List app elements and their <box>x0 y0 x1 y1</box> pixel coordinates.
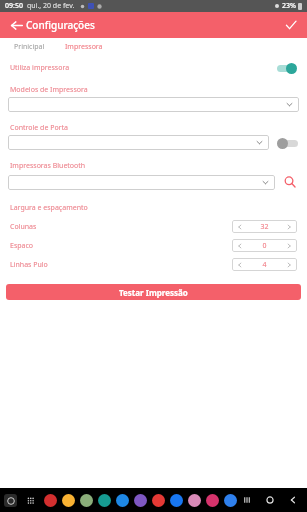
button[interactable]: Dropdown <box>8 97 299 112</box>
button[interactable]: Dropdown <box>8 175 275 190</box>
button[interactable]: Assistant <box>4 494 17 507</box>
button[interactable]: Prinicipal <box>10 38 49 56</box>
button[interactable]: App 2 <box>62 494 75 507</box>
button[interactable]: Dropdown <box>8 135 269 150</box>
button[interactable]: Toggle off <box>277 137 299 149</box>
button[interactable]: Increase Espaco <box>281 239 297 252</box>
button[interactable]: Back <box>6 15 26 35</box>
staticText: Prinicipal <box>14 42 45 52</box>
button[interactable]: Decrease Linhas Pulo <box>232 258 248 271</box>
staticText: Largura e espaçamento <box>10 203 88 213</box>
staticText: 23% <box>282 1 296 11</box>
staticText: 4 <box>262 260 267 270</box>
staticText: Impressora <box>65 42 103 52</box>
staticText: 09:50 <box>5 1 23 11</box>
button[interactable]: Messages <box>116 494 129 507</box>
staticText: Modelos de Impressora <box>10 85 88 95</box>
staticText: Linhas Pulo <box>10 260 48 270</box>
staticText: 32 <box>260 222 269 232</box>
staticText: Configurações <box>26 18 95 32</box>
button[interactable]: App 3 <box>188 494 201 507</box>
button[interactable]: Maps <box>80 494 93 507</box>
button[interactable]: Increase Linhas Pulo <box>281 258 297 271</box>
button[interactable]: App 1 <box>44 494 57 507</box>
button[interactable]: Back <box>286 493 300 507</box>
staticText: Controle de Porta <box>10 123 68 133</box>
button[interactable]: Confirm <box>281 15 301 35</box>
button[interactable]: Increase Colunas <box>281 220 297 233</box>
button[interactable]: Calendar <box>98 494 111 507</box>
button[interactable]: Utiliza impressora <box>0 58 307 78</box>
staticText: Impressoras Bluetooth <box>10 161 86 171</box>
button[interactable]: All apps <box>24 494 37 507</box>
staticText: Colunas <box>10 222 37 232</box>
button[interactable]: Toggle on <box>275 62 297 74</box>
button[interactable]: Recents <box>240 493 254 507</box>
staticText: Espaco <box>10 241 34 251</box>
button[interactable]: App 4 <box>224 494 237 507</box>
button[interactable]: Decrease Colunas <box>232 220 248 233</box>
button[interactable]: Search <box>281 173 299 191</box>
button[interactable]: Instagram <box>206 494 219 507</box>
button[interactable]: Video <box>152 494 165 507</box>
staticText: 0 <box>262 241 267 251</box>
button[interactable]: Home <box>263 493 277 507</box>
staticText: Utiliza impressora <box>10 63 70 73</box>
staticText: Testar Impressão <box>119 287 188 298</box>
button[interactable]: Impressora <box>61 38 107 58</box>
button[interactable]: Facebook <box>170 494 183 507</box>
button[interactable]: Decrease Espaco <box>232 239 248 252</box>
staticText: qui., 20 de fev. <box>27 1 75 11</box>
button[interactable]: Testar Impressão <box>6 284 301 300</box>
button[interactable]: Browser <box>134 494 147 507</box>
